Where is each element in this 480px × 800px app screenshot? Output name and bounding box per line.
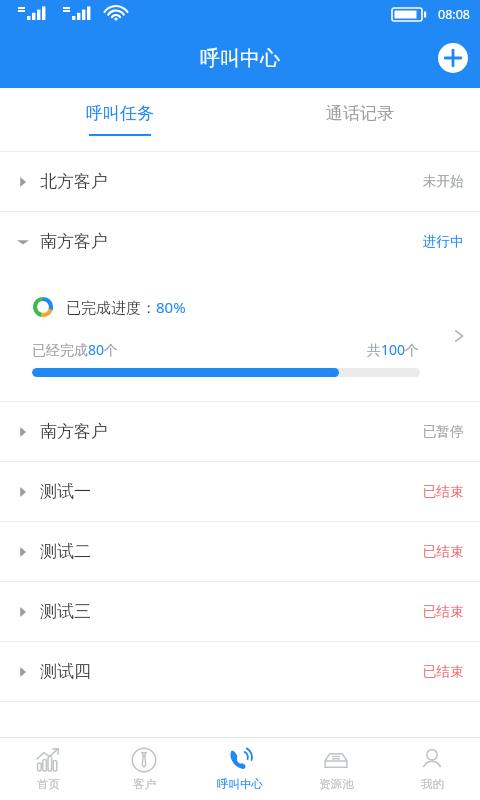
button[interactable]: 通话记录 [240, 88, 480, 151]
staticText: 已结束 [423, 603, 464, 620]
staticText: 北方客户 [40, 171, 108, 192]
staticText: 资源池 [319, 777, 354, 791]
staticText: 通话记录 [326, 103, 394, 124]
staticText: 南方客户 [40, 421, 108, 442]
staticText: 呼叫中心 [200, 46, 280, 71]
button[interactable]: Add [438, 43, 468, 73]
button[interactable]: 南方客户 [0, 402, 480, 461]
staticText: 测试三 [40, 601, 91, 622]
staticText: 已结束 [423, 663, 464, 680]
staticText: 客户 [133, 777, 156, 791]
staticText: 已结束 [423, 483, 464, 500]
button[interactable]: 南方客户 [0, 212, 480, 271]
button[interactable]: 测试三 [0, 582, 480, 641]
staticText: 共100个 [367, 340, 420, 359]
staticText: 南方客户 [40, 231, 108, 252]
staticText: 呼叫中心 [217, 777, 263, 791]
button[interactable]: 客户 [96, 738, 192, 800]
staticText: 未开始 [423, 173, 464, 190]
staticText: 呼叫任务 [86, 103, 154, 124]
button[interactable]: 北方客户 [0, 152, 480, 211]
staticText: 测试四 [40, 661, 91, 682]
button[interactable]: 我的 [384, 738, 480, 800]
button[interactable]: 资源池 [288, 738, 384, 800]
staticText: 测试一 [40, 481, 91, 502]
staticText: 已结束 [423, 543, 464, 560]
staticText: 测试二 [40, 541, 91, 562]
button[interactable]: 已完成进度：80% [0, 271, 480, 401]
staticText: 已完成进度：80% [66, 297, 186, 317]
staticText: 已经完成80个 [32, 340, 119, 359]
staticText: 首页 [37, 777, 60, 791]
button[interactable]: 首页 [0, 738, 96, 800]
button[interactable]: 测试一 [0, 462, 480, 521]
staticText: 我的 [421, 777, 444, 791]
staticText: 进行中 [423, 233, 464, 250]
button[interactable]: 呼叫任务 [0, 88, 240, 151]
staticText: 08:08 [438, 6, 470, 23]
staticText: 已暂停 [423, 423, 464, 440]
button[interactable]: 测试四 [0, 642, 480, 701]
button[interactable]: 测试二 [0, 522, 480, 581]
button[interactable]: 呼叫中心 [192, 738, 288, 800]
